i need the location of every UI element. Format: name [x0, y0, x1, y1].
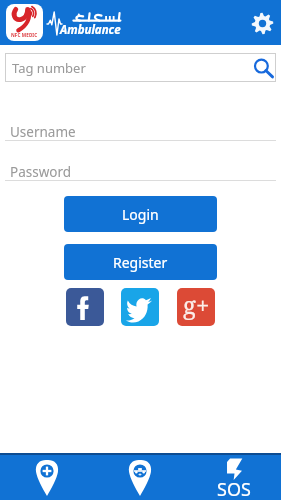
staticText: Tag number [12, 59, 86, 77]
button[interactable]: Register [64, 244, 217, 280]
staticText: Username [10, 123, 76, 140]
button[interactable]: Nearby hospitals [0, 455, 93, 500]
staticText: g+ [183, 288, 210, 321]
button[interactable]: Login [64, 196, 217, 232]
staticText: Register [113, 253, 168, 272]
staticText: NFC MEDIC [11, 32, 38, 38]
button[interactable]: Search [250, 55, 276, 81]
button[interactable]: Settings [246, 7, 278, 39]
button[interactable]: Google Plus [177, 288, 215, 326]
button[interactable]: Facebook [66, 288, 104, 326]
button[interactable]: Tag number [5, 53, 276, 82]
staticText: SOS [217, 477, 251, 500]
button[interactable]: Nearby ambulances [93, 455, 187, 500]
button[interactable]: Password [5, 163, 276, 181]
staticText: Login [122, 205, 159, 224]
staticText: Ambulance [60, 22, 121, 38]
button[interactable]: Twitter [121, 288, 159, 326]
staticText: Password [10, 163, 72, 180]
button[interactable]: Username [5, 123, 276, 141]
button[interactable]: SOS [187, 455, 281, 500]
